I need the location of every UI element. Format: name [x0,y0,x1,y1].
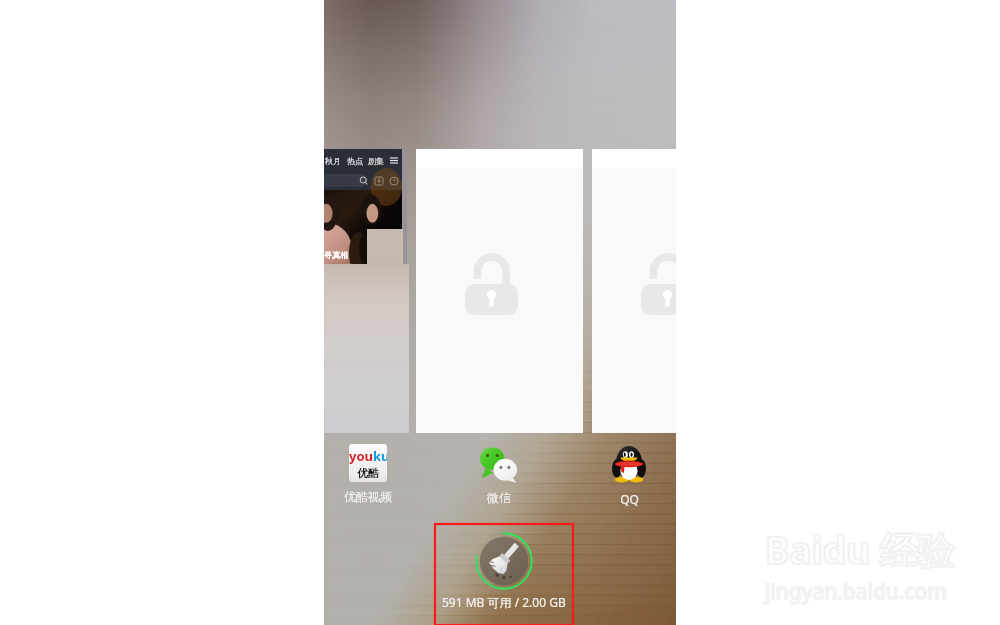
staticText: 寻真相 [324,250,348,260]
staticText: 剧集 [368,156,384,166]
button[interactable] [324,264,409,433]
staticText: ku [373,447,387,465]
staticText: 优酷视频 [344,489,392,504]
button[interactable] [592,149,676,433]
button[interactable]: Clean memory [435,524,573,625]
staticText: you [349,447,373,465]
button[interactable]: you [325,444,411,504]
button[interactable]: History [389,176,399,186]
button[interactable]: QQ [586,444,672,507]
staticText: 微信 [487,490,511,505]
staticText: jingyan.baidu.com [765,577,947,606]
staticText: Baidu 经验 [765,524,954,575]
button[interactable]: Downloads [374,176,384,186]
button[interactable]: 秋月 [324,149,402,263]
staticText: QQ [620,491,639,507]
button[interactable]: Search [359,176,369,186]
staticText: 591 MB 可用 / 2.00 GB [442,594,566,610]
staticText: 热点 [347,156,363,166]
staticText: 优酷 [357,466,379,480]
button[interactable]: Menu [390,157,398,164]
button[interactable] [416,149,583,433]
staticText: 秋月 [325,156,341,166]
button[interactable]: 微信 [456,444,542,505]
